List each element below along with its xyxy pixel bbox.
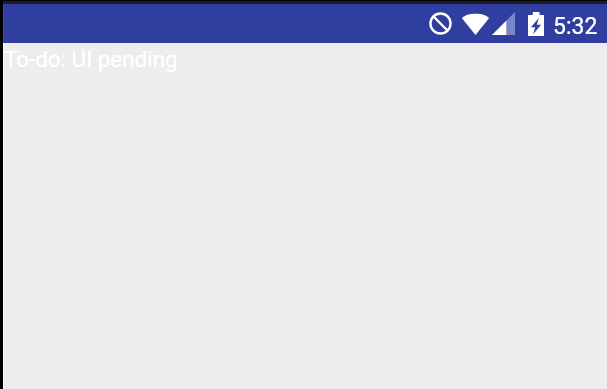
- button[interactable]: Wi-Fi signal: [462, 12, 489, 35]
- button[interactable]: [3, 4, 607, 43]
- staticText: To-do: UI pending: [4, 46, 178, 72]
- button[interactable]: 5:32: [553, 13, 598, 40]
- button[interactable]: Cellular signal: [492, 12, 515, 35]
- button[interactable]: Battery charging: [528, 12, 544, 36]
- button[interactable]: Do not disturb: [429, 12, 452, 35]
